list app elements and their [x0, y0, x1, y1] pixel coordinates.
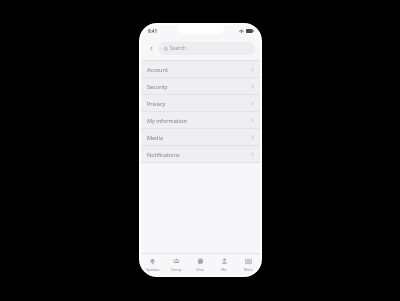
staticText: Security [147, 83, 251, 90]
staticText: Updates [145, 267, 160, 272]
button[interactable]: Updates [141, 254, 164, 275]
button[interactable]: My information [141, 112, 260, 128]
button[interactable]: Chat [188, 254, 212, 275]
staticText: 9:41 [148, 28, 157, 34]
staticText: Account [147, 66, 251, 73]
button[interactable]: Group [164, 254, 188, 275]
staticText: Notifications [147, 151, 251, 158]
staticText: Me [221, 267, 227, 272]
button[interactable]: Security [141, 78, 260, 94]
button[interactable]: Back [146, 43, 156, 53]
staticText: Media [147, 134, 251, 141]
button[interactable]: More [236, 254, 260, 275]
staticText: Chat [196, 267, 204, 272]
button[interactable]: Me [212, 254, 236, 275]
staticText: More [244, 267, 253, 272]
button[interactable]: Account [141, 61, 260, 77]
button[interactable]: Privacy [141, 95, 260, 111]
staticText: Group [171, 267, 182, 272]
button[interactable]: Search [158, 42, 255, 55]
staticText: Search [170, 45, 186, 52]
staticText: My information [147, 117, 251, 124]
staticText: Privacy [147, 100, 251, 107]
button[interactable]: Media [141, 129, 260, 145]
button[interactable]: Notifications [141, 146, 260, 162]
